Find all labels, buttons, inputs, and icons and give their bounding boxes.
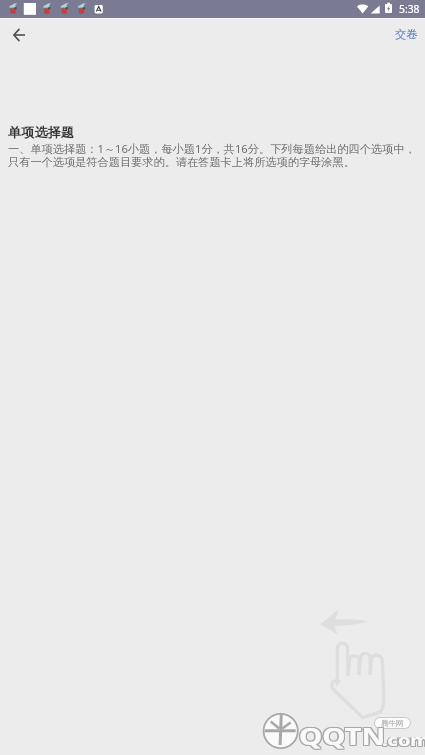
staticText: .com [383, 730, 425, 751]
staticText: 一、单项选择题：1～16小题，每小题1分，共16分。下列每题给出的四个选项中， [8, 141, 416, 156]
staticText: .com [382, 730, 425, 751]
staticText: QQTN [300, 720, 387, 750]
staticText: 5:38 [399, 2, 420, 16]
staticText: .com [382, 731, 425, 752]
staticText: .com [381, 730, 425, 751]
staticText: QQTN [298, 722, 385, 752]
staticText: QQTN [298, 720, 385, 750]
staticText: QQTN [300, 722, 387, 752]
staticText: 只有一个选项是符合题目要求的。请在答题卡上将所选项的字母涂黑。 [8, 155, 355, 169]
staticText: QQTN [299, 722, 386, 752]
staticText: QQTN [299, 721, 386, 751]
staticText: 交卷 [395, 27, 418, 41]
staticText: QQTN [300, 721, 387, 751]
staticText: 单项选择题 [8, 124, 74, 141]
staticText: 腾牛网 [381, 719, 404, 728]
staticText: .com [383, 729, 425, 750]
staticText: .com [382, 729, 425, 750]
staticText: .com [383, 731, 425, 752]
staticText: .com [381, 729, 425, 750]
staticText: QQTN [298, 721, 385, 751]
staticText: QQTN [299, 720, 386, 750]
button[interactable]: Back [6, 22, 31, 47]
staticText: .com [381, 731, 425, 752]
button[interactable]: 交卷 [391, 22, 422, 46]
